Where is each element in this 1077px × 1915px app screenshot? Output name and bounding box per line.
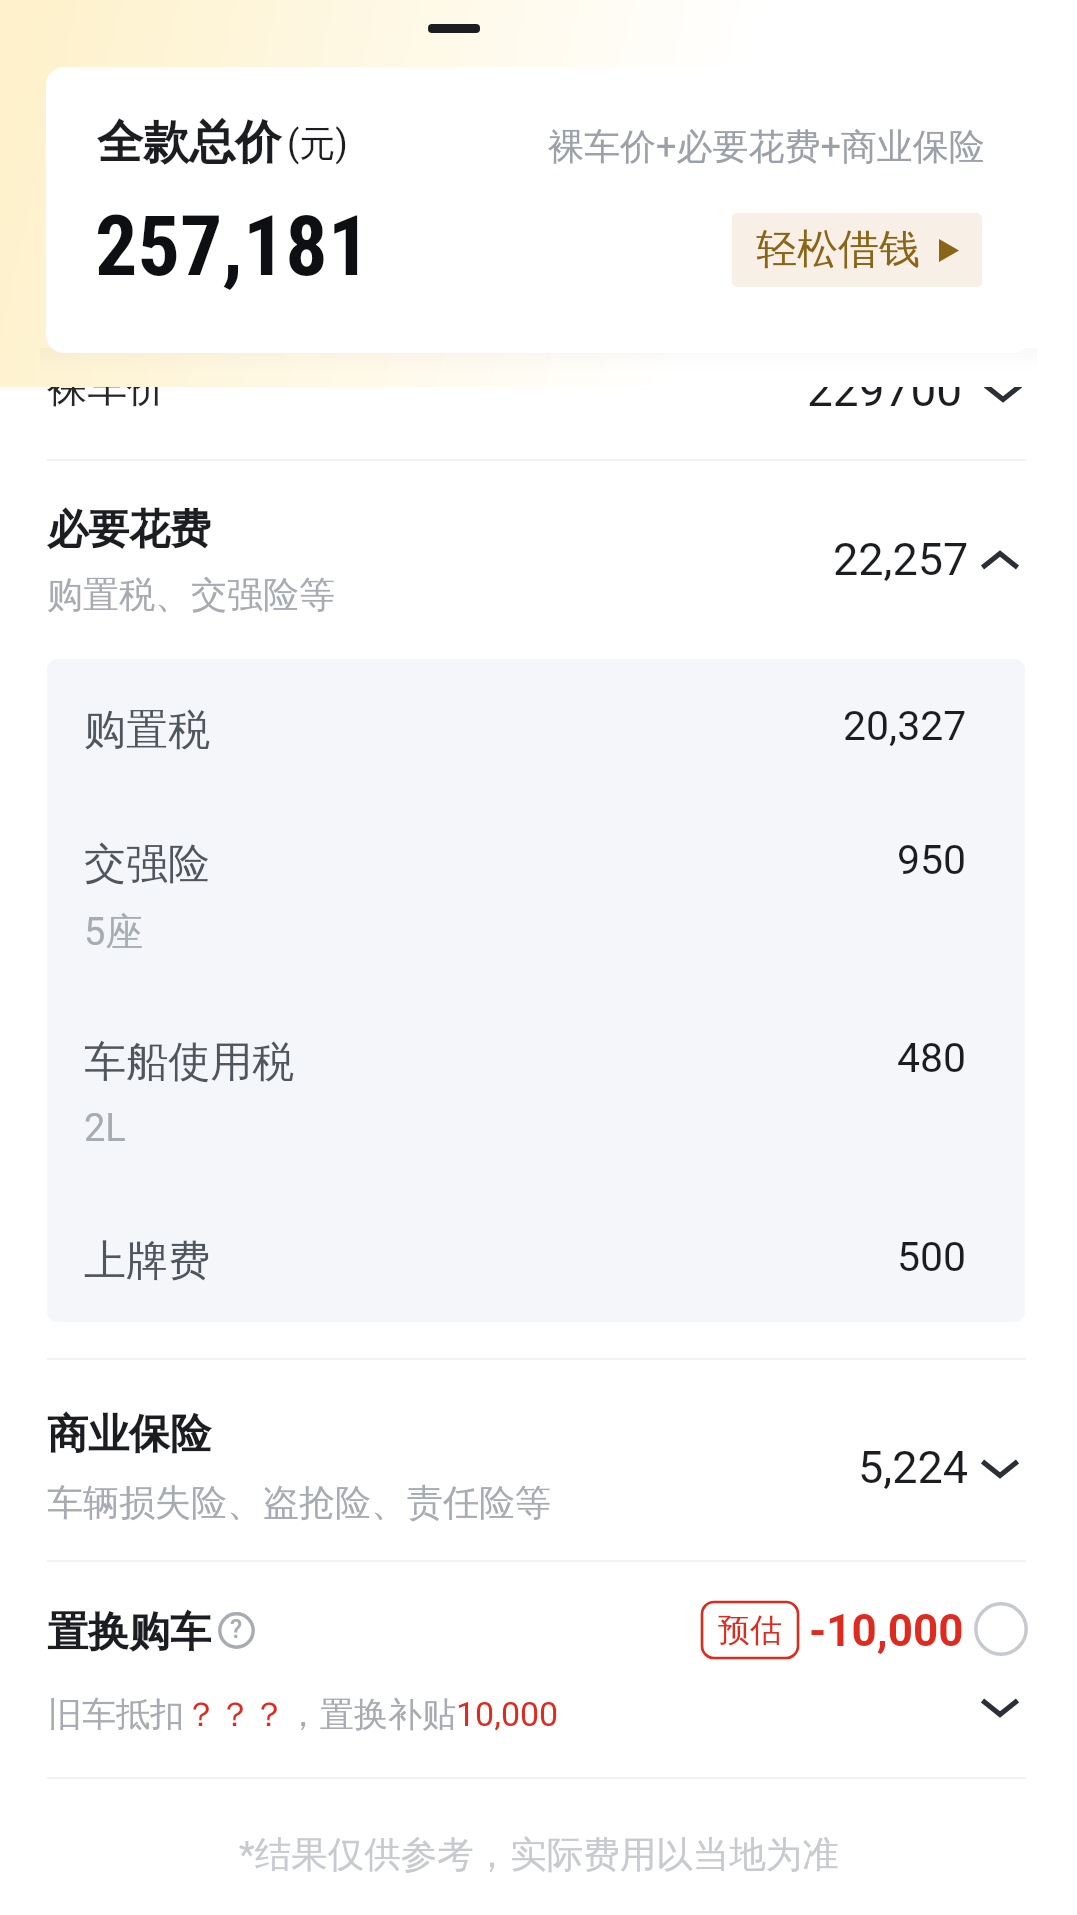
staticText: 置换购车 [47,1607,211,1659]
staticText: 20,327 [843,702,967,750]
staticText: 购置税 [84,704,210,757]
staticText: 5,224 [858,1441,969,1494]
button[interactable] [47,676,1025,776]
button[interactable] [0,1378,1077,1558]
staticText: 229700 [807,363,963,417]
staticText: 预估 [718,1610,782,1650]
staticText: 车船使用税 [84,1036,294,1089]
staticText: 裸车价 [47,362,167,412]
staticText: -10,000 [809,1605,964,1657]
staticText: 2L [84,1106,126,1151]
button[interactable] [47,810,1025,980]
staticText: 裸车价+必要花费+商业保险 [548,124,985,169]
staticText: ? [230,1615,243,1644]
button[interactable]: Help [218,1612,255,1649]
button[interactable] [47,1008,1025,1178]
button[interactable]: 全款 tab [395,0,515,36]
staticText: 商业保险 [47,1409,211,1461]
staticText: 950 [897,836,967,884]
button[interactable]: Expand trade-in detail [980,1698,1020,1717]
staticText: *结果仅供参考，实际费用以当地为准 [239,1832,839,1878]
staticText: 车辆损失险、盗抢险、责任险等 [47,1480,551,1525]
staticText: 全款总价 [97,114,281,172]
staticText: 5座 [84,908,144,956]
staticText: 购置税、交强险等 [47,572,335,617]
staticText: 257,181 [95,197,371,295]
staticText: 480 [897,1034,967,1082]
staticText: 22,257 [833,533,969,586]
button[interactable] [0,470,1077,650]
staticText: 必要花费 [47,504,211,556]
staticText: 交强险 [84,838,210,891]
button[interactable]: 轻松借钱 [732,213,982,287]
staticText: 上牌费 [84,1235,210,1288]
button[interactable]: Toggle trade-in [974,1602,1028,1656]
staticText: 500 [897,1233,967,1281]
staticText: (元) [287,121,348,166]
other: Collapse 必要花费 [980,551,1020,570]
other: Expand 商业保险 [980,1459,1020,1478]
button[interactable] [47,1207,1025,1307]
staticText: 轻松借钱 [756,224,920,276]
staticText: 旧车抵扣？？？，置换补贴10,000 [48,1693,559,1736]
